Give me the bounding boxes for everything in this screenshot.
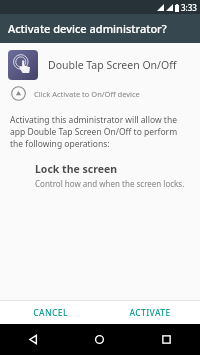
staticText: Double Tap Screen On/Off bbox=[48, 58, 177, 72]
button[interactable]: Home bbox=[66, 324, 133, 355]
staticText: Control how and when the screen locks. bbox=[35, 178, 185, 189]
staticText: ACTIVATE bbox=[129, 307, 171, 319]
staticText: Lock the screen bbox=[35, 162, 118, 176]
staticText: CANCEL bbox=[33, 307, 68, 319]
button[interactable]: ACTIVATE bbox=[100, 301, 200, 324]
staticText: Activating this administrator will allow… bbox=[10, 114, 190, 150]
button[interactable]: Back bbox=[0, 324, 66, 355]
button[interactable]: CANCEL bbox=[0, 301, 100, 324]
button[interactable]: Recents bbox=[133, 324, 200, 355]
staticText: Activate device administrator? bbox=[8, 21, 167, 36]
staticText: 3:33 bbox=[181, 2, 197, 13]
other: Collapse bbox=[11, 86, 26, 101]
button[interactable]: Collapse bbox=[0, 84, 200, 103]
staticText: Click Activate to On/Off device bbox=[34, 89, 140, 99]
